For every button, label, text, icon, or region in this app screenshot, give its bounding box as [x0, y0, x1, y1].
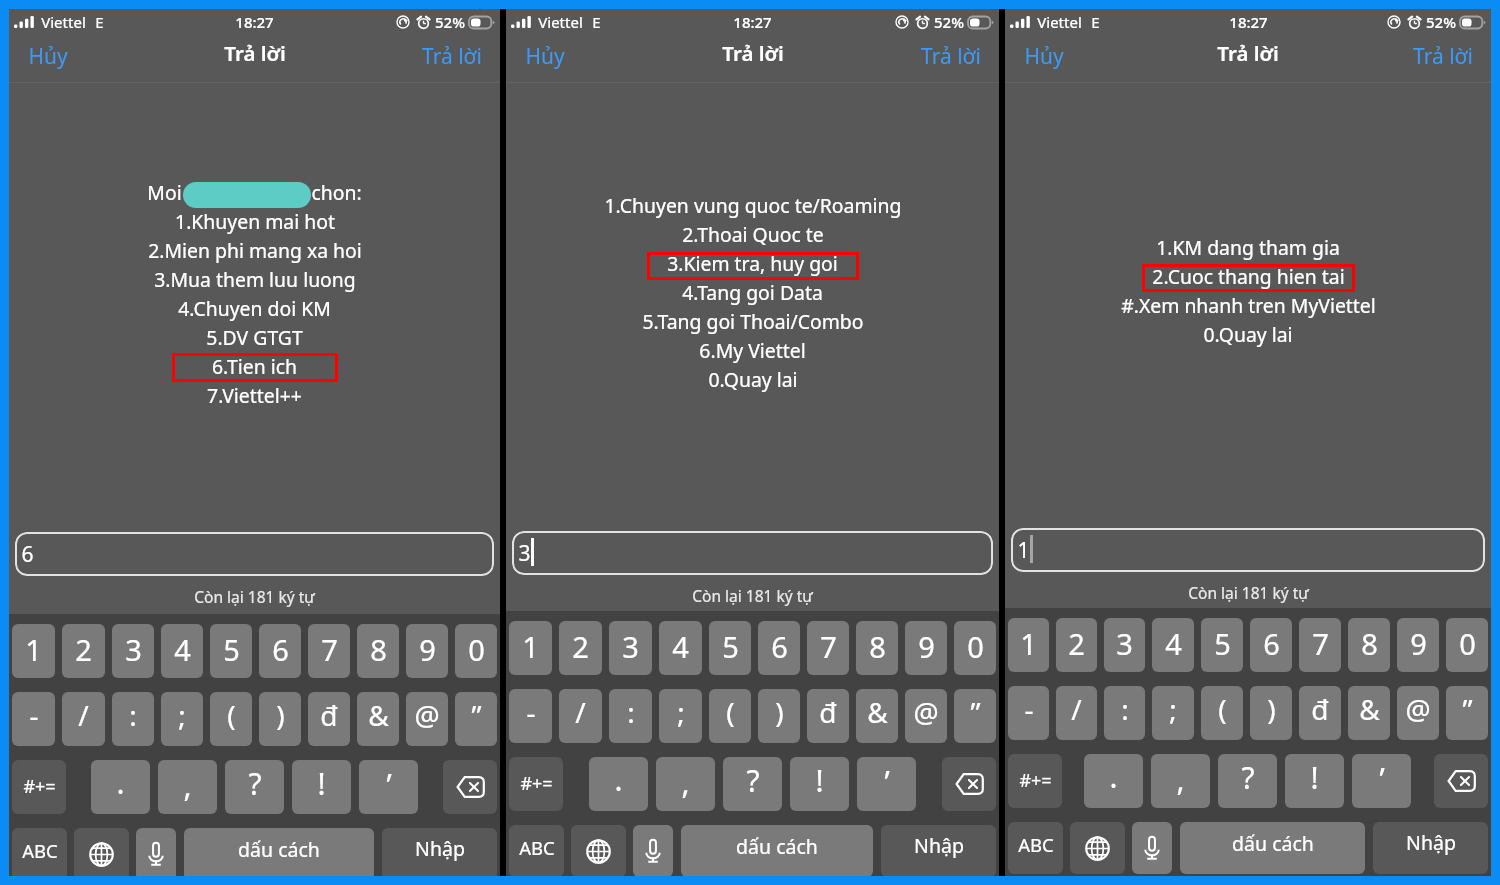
- button[interactable]: ’: [1352, 754, 1411, 808]
- button[interactable]: 6: [758, 621, 800, 675]
- button[interactable]: #+=: [12, 760, 66, 814]
- button[interactable]: Change keyboard language: [74, 828, 129, 876]
- button[interactable]: 2: [559, 621, 602, 675]
- button[interactable]: Trả lời: [397, 36, 500, 89]
- button[interactable]: 6: [1250, 618, 1292, 672]
- button[interactable]: 4: [161, 624, 203, 678]
- button[interactable]: &: [1348, 686, 1390, 740]
- button[interactable]: 1: [12, 624, 55, 678]
- button[interactable]: 1: [1008, 618, 1049, 672]
- button[interactable]: :: [112, 692, 154, 746]
- button[interactable]: Nhập: [382, 828, 497, 876]
- button[interactable]: /: [62, 692, 105, 746]
- button[interactable]: 3: [609, 621, 652, 675]
- button[interactable]: dấu cách: [681, 825, 873, 876]
- button[interactable]: .: [91, 760, 150, 814]
- button[interactable]: 7: [807, 621, 849, 675]
- button[interactable]: ?: [723, 757, 782, 811]
- button[interactable]: @: [1397, 686, 1439, 740]
- button[interactable]: 3: [1104, 618, 1145, 672]
- button[interactable]: Trả lời: [1388, 36, 1491, 89]
- button[interactable]: 8: [856, 621, 898, 675]
- button[interactable]: &: [357, 692, 399, 746]
- button[interactable]: 0: [954, 621, 996, 675]
- button[interactable]: đ: [807, 689, 849, 743]
- button[interactable]: #+=: [509, 757, 563, 811]
- button[interactable]: (: [210, 692, 252, 746]
- button[interactable]: ): [259, 692, 301, 746]
- button[interactable]: 5: [709, 621, 751, 675]
- button[interactable]: @: [406, 692, 448, 746]
- button[interactable]: đ: [1299, 686, 1341, 740]
- button[interactable]: !: [292, 760, 351, 814]
- button[interactable]: dấu cách: [184, 828, 374, 876]
- button[interactable]: 9: [406, 624, 448, 678]
- button[interactable]: ABC: [12, 828, 67, 876]
- button[interactable]: 9: [905, 621, 947, 675]
- button[interactable]: .: [589, 757, 648, 811]
- button[interactable]: Hủy: [1005, 36, 1089, 89]
- button[interactable]: ”: [455, 692, 497, 746]
- button[interactable]: ,: [1151, 754, 1210, 808]
- button[interactable]: Trả lời: [896, 36, 999, 89]
- button[interactable]: ?: [225, 760, 284, 814]
- button[interactable]: :: [1104, 686, 1145, 740]
- button[interactable]: 4: [1152, 618, 1194, 672]
- button[interactable]: Hủy: [9, 36, 93, 89]
- button[interactable]: Change keyboard language: [571, 825, 626, 876]
- button[interactable]: 7: [1299, 618, 1341, 672]
- button[interactable]: ;: [659, 689, 702, 743]
- button[interactable]: Nhập: [881, 825, 996, 876]
- button[interactable]: #+=: [1008, 754, 1062, 808]
- button[interactable]: 0: [455, 624, 497, 678]
- button[interactable]: 0: [1446, 618, 1488, 672]
- button[interactable]: Backspace: [942, 757, 996, 811]
- button[interactable]: ): [1250, 686, 1292, 740]
- button[interactable]: -: [1008, 686, 1049, 740]
- button[interactable]: ,: [158, 760, 217, 814]
- button[interactable]: ’: [857, 757, 916, 811]
- button[interactable]: ABC: [509, 825, 564, 876]
- button[interactable]: Dictate: [136, 828, 176, 876]
- button[interactable]: 2: [62, 624, 105, 678]
- button[interactable]: @: [905, 689, 947, 743]
- button[interactable]: ): [758, 689, 800, 743]
- button[interactable]: -: [12, 692, 55, 746]
- button[interactable]: ?: [1218, 754, 1277, 808]
- button[interactable]: 4: [659, 621, 702, 675]
- button[interactable]: Dictate: [633, 825, 673, 876]
- button[interactable]: 6: [259, 624, 301, 678]
- button[interactable]: /: [559, 689, 602, 743]
- button[interactable]: !: [790, 757, 849, 811]
- button[interactable]: ABC: [1008, 822, 1063, 874]
- button[interactable]: Nhập: [1373, 822, 1488, 874]
- button[interactable]: &: [856, 689, 898, 743]
- button[interactable]: đ: [308, 692, 350, 746]
- button[interactable]: ;: [1152, 686, 1194, 740]
- button[interactable]: 5: [210, 624, 252, 678]
- button[interactable]: ,: [656, 757, 715, 811]
- button[interactable]: Dictate: [1132, 822, 1172, 874]
- button[interactable]: .: [1084, 754, 1143, 808]
- button[interactable]: Hủy: [506, 36, 590, 89]
- button[interactable]: (: [709, 689, 751, 743]
- button[interactable]: 6: [15, 532, 494, 576]
- button[interactable]: ”: [954, 689, 996, 743]
- button[interactable]: 1: [1011, 528, 1485, 572]
- button[interactable]: Backspace: [443, 760, 497, 814]
- button[interactable]: Change keyboard language: [1070, 822, 1125, 874]
- button[interactable]: 9: [1397, 618, 1439, 672]
- button[interactable]: 8: [357, 624, 399, 678]
- button[interactable]: 5: [1201, 618, 1243, 672]
- button[interactable]: -: [509, 689, 552, 743]
- button[interactable]: 3: [112, 624, 154, 678]
- button[interactable]: 1: [509, 621, 552, 675]
- button[interactable]: 2: [1056, 618, 1097, 672]
- button[interactable]: 3: [512, 531, 993, 575]
- button[interactable]: 7: [308, 624, 350, 678]
- button[interactable]: 8: [1348, 618, 1390, 672]
- button[interactable]: /: [1056, 686, 1097, 740]
- button[interactable]: Backspace: [1434, 754, 1488, 808]
- button[interactable]: ’: [359, 760, 418, 814]
- button[interactable]: dấu cách: [1180, 822, 1365, 874]
